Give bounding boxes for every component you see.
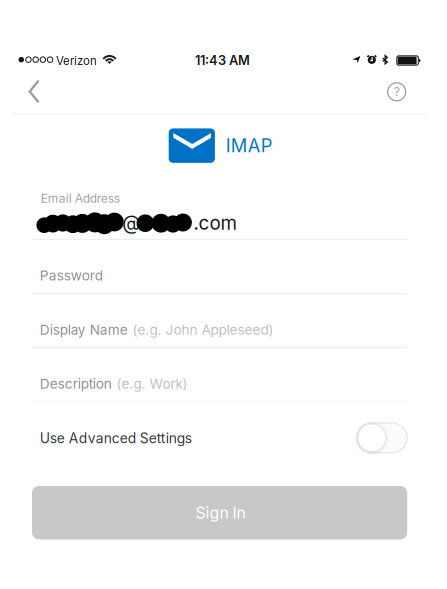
staticText: Use Advanced Settings <box>40 430 192 447</box>
staticText: .com <box>193 212 236 234</box>
staticText: IMAP <box>226 135 273 157</box>
staticText: ? <box>394 84 400 99</box>
staticText: Password <box>40 267 103 284</box>
button[interactable]: Help <box>375 70 419 114</box>
staticText: @ <box>122 212 140 234</box>
button[interactable]: Sign In <box>32 486 407 539</box>
staticText: Verizon <box>56 54 97 68</box>
staticText: (e.g. Work) <box>117 376 188 392</box>
staticText: 11:43 AM <box>195 53 250 68</box>
staticText: Email Address <box>41 191 120 205</box>
staticText: (e.g. John Appleseed) <box>133 321 274 338</box>
staticText: Description <box>40 376 112 392</box>
button[interactable]: Use Advanced Settings <box>32 402 407 456</box>
button[interactable]: Back <box>11 68 57 114</box>
staticText: Display Name <box>40 321 128 338</box>
staticText: Sign In <box>195 503 245 522</box>
